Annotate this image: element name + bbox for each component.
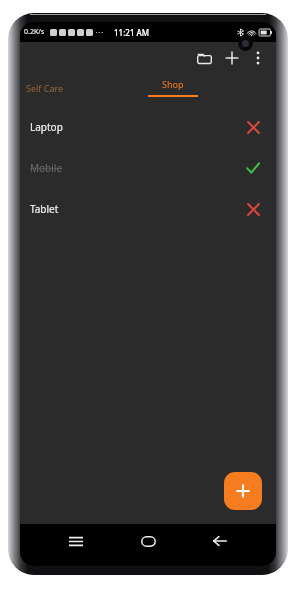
button[interactable]: Mobile <box>20 147 276 188</box>
other: Completed <box>242 157 264 179</box>
button[interactable]: Tablet <box>20 188 276 229</box>
button[interactable]: Folders <box>190 44 218 72</box>
button[interactable]: Add <box>218 44 246 72</box>
staticText: Shop <box>162 78 184 90</box>
button[interactable]: Laptop <box>20 106 276 147</box>
staticText: Mobile <box>30 161 63 175</box>
button[interactable]: Add item <box>224 472 262 510</box>
button[interactable]: Back <box>204 525 236 557</box>
button[interactable]: Home <box>132 525 164 557</box>
button[interactable]: Recent apps <box>60 525 92 557</box>
button[interactable]: More options <box>246 46 270 70</box>
staticText: 11:21 AM <box>114 27 150 38</box>
staticText: Self Care <box>26 82 64 94</box>
staticText: Laptop <box>30 120 63 134</box>
staticText: 0.2K/s <box>24 27 45 37</box>
staticText: Tablet <box>30 202 59 216</box>
button[interactable]: Self Care <box>20 74 82 101</box>
other: Not completed <box>242 116 264 138</box>
other: Not completed <box>242 198 264 220</box>
button[interactable]: Shop <box>145 74 201 101</box>
staticText: ⋯ <box>95 28 103 37</box>
